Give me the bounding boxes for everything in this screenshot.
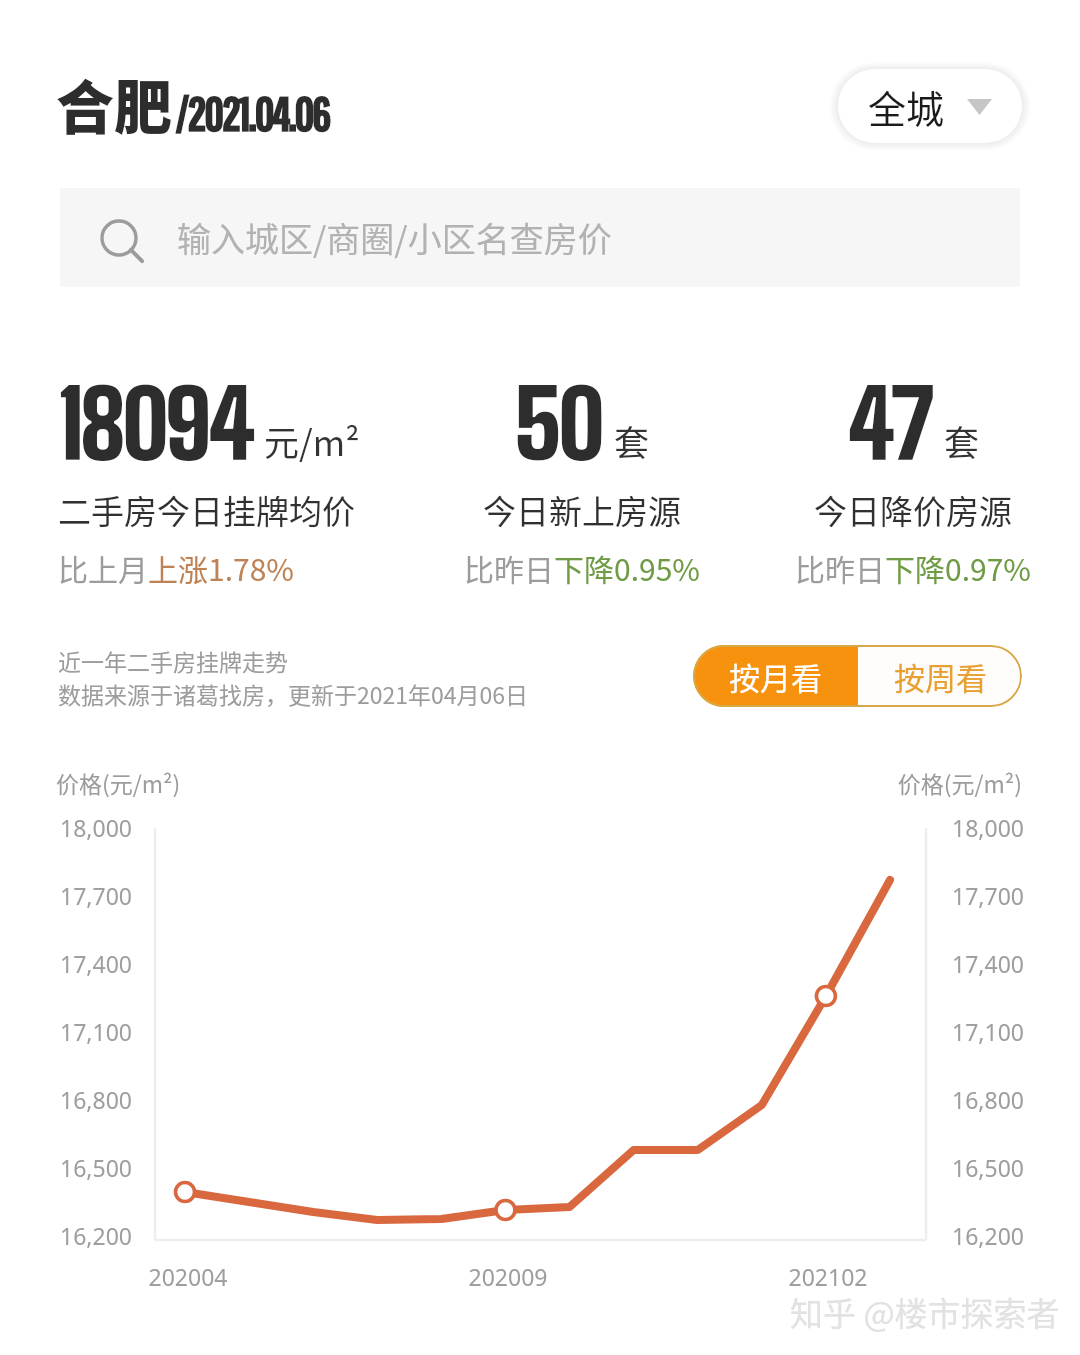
staticText: 17,100 xyxy=(860,1016,1024,1047)
staticText: 套 xyxy=(944,415,980,466)
staticText: 16,500 xyxy=(860,1152,1024,1183)
staticText: 17,700 xyxy=(860,880,1024,911)
staticText: 今日降价房源 xyxy=(814,486,1012,534)
button[interactable]: 按周看 xyxy=(858,645,1022,707)
staticText: 价格(元/m²) xyxy=(790,766,1022,799)
staticText: 17,100 xyxy=(60,1016,132,1047)
staticText: 16,200 xyxy=(60,1220,132,1251)
staticText: 按周看 xyxy=(894,654,987,699)
staticText: 比上月上涨1.78% xyxy=(58,546,294,589)
staticText: 16,200 xyxy=(860,1220,1024,1251)
staticText: 合肥 xyxy=(56,62,173,146)
staticText: 元/m² xyxy=(264,415,360,466)
staticText: 今日新上房源 xyxy=(483,486,681,534)
staticText: 50 xyxy=(514,368,602,479)
staticText: 16,800 xyxy=(860,1084,1024,1115)
staticText: 价格(元/m²) xyxy=(56,766,181,799)
staticText: 知乎 @楼市探索者 xyxy=(790,1288,1060,1336)
staticText: 全城 xyxy=(868,79,945,134)
staticText: 16,500 xyxy=(60,1152,132,1183)
staticText: 数据来源于诸葛找房，更新于2021年04月06日 xyxy=(58,677,529,710)
staticText: 套 xyxy=(614,415,650,466)
staticText: 18,000 xyxy=(60,812,132,843)
button[interactable]: 搜索 输入城区/商圈/小区名查房价 xyxy=(60,188,1020,287)
button[interactable]: 按月看 xyxy=(693,645,858,707)
staticText: 202009 xyxy=(428,1261,588,1292)
staticText: 202004 xyxy=(108,1261,268,1292)
staticText: 输入城区/商圈/小区名查房价 xyxy=(177,213,612,262)
staticText: 18094 xyxy=(58,368,252,479)
staticText: 202102 xyxy=(748,1261,908,1292)
button[interactable]: 选择城区 全城 xyxy=(838,69,1022,143)
staticText: 二手房今日挂牌均价 xyxy=(58,486,355,534)
staticText: 17,400 xyxy=(860,948,1024,979)
staticText: 近一年二手房挂牌走势 xyxy=(58,644,288,677)
staticText: 47 xyxy=(847,368,932,479)
staticText: 17,700 xyxy=(60,880,132,911)
staticText: 16,800 xyxy=(60,1084,132,1115)
staticText: 18,000 xyxy=(860,812,1024,843)
staticText: 比昨日下降0.97% xyxy=(795,546,1031,589)
staticText: /2021.04.06 xyxy=(175,88,330,140)
staticText: 按月看 xyxy=(729,654,822,699)
staticText: 17,400 xyxy=(60,948,132,979)
staticText: 比昨日下降0.95% xyxy=(464,546,700,589)
